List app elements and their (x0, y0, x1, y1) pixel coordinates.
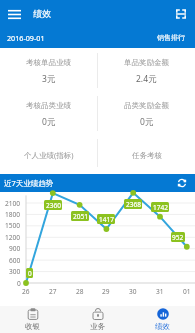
button[interactable]: 绩效 (130, 306, 195, 333)
button[interactable]: 考核单品业绩 (0, 50, 97, 93)
staticText: 900 (9, 244, 21, 253)
staticText: 任务考核 (132, 151, 162, 160)
staticText: 1417 (99, 215, 114, 224)
staticText: 3元 (42, 73, 56, 85)
button[interactable]: 考核品类业绩 (0, 93, 97, 136)
staticText: 31 (156, 287, 164, 296)
staticText: 1500 (5, 221, 21, 230)
staticText: 29 (102, 287, 110, 296)
button[interactable]: 单品奖励金额 (98, 50, 195, 93)
staticText: 2016-09-01 (7, 33, 45, 43)
button[interactable]: Scan (176, 9, 186, 19)
staticText: 单品奖励金额 (124, 58, 169, 67)
button[interactable]: 业务 (65, 306, 130, 333)
button[interactable]: 个人业绩(指标) (0, 136, 97, 174)
staticText: 1800 (5, 210, 21, 219)
staticText: 2360 (46, 201, 61, 210)
staticText: 28 (76, 287, 84, 296)
staticText: 2.4元 (136, 73, 157, 85)
button[interactable]: Menu (8, 8, 21, 21)
staticText: 2051 (73, 212, 88, 221)
staticText: 近7天业绩趋势 (4, 178, 54, 188)
staticText: 26 (22, 287, 30, 296)
staticText: 2100 (5, 199, 21, 208)
staticText: 个人业绩(指标) (24, 150, 74, 160)
button[interactable]: 品类奖励金额 (98, 93, 195, 136)
staticText: 300 (9, 267, 21, 276)
staticText: 1200 (5, 233, 21, 242)
staticText: 0元 (140, 116, 154, 128)
staticText: 销售排行 (157, 33, 185, 42)
staticText: 30 (129, 287, 137, 296)
staticText: 品类奖励金额 (124, 101, 169, 110)
staticText: 0 (17, 279, 21, 288)
button[interactable]: Refresh (177, 178, 187, 188)
staticText: 2368 (126, 200, 141, 209)
staticText: 01 (183, 287, 191, 296)
staticText: 1742 (153, 203, 168, 212)
button[interactable]: 销售排行 (157, 33, 185, 42)
staticText: 0 (28, 269, 32, 278)
staticText: 收银 (25, 322, 40, 331)
button[interactable]: 收银 (0, 306, 65, 333)
staticText: 绩效 (155, 322, 170, 331)
staticText: 952 (172, 233, 184, 242)
staticText: 考核单品业绩 (26, 58, 71, 67)
staticText: 600 (9, 256, 21, 265)
staticText: 考核品类业绩 (26, 101, 71, 110)
staticText: 绩效 (33, 8, 51, 19)
staticText: 业务 (90, 322, 105, 331)
button[interactable]: 任务考核 (98, 136, 195, 174)
staticText: 27 (49, 287, 57, 296)
staticText: 0元 (42, 116, 56, 128)
